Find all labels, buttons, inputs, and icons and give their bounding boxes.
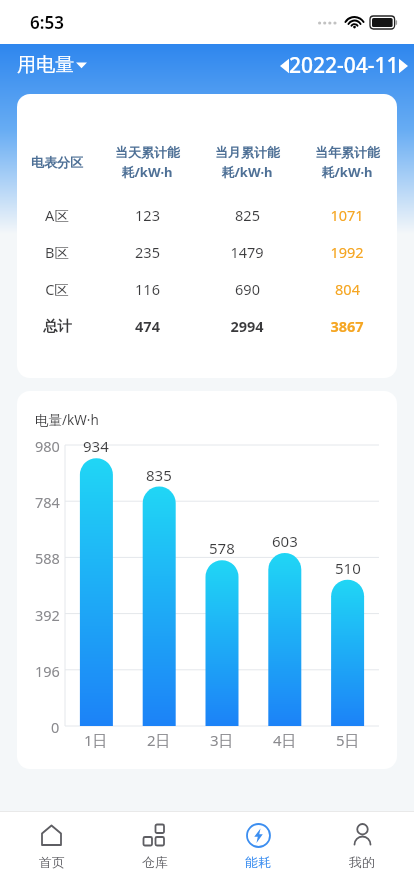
staticText: 当月累计能	[215, 144, 280, 160]
staticText: 784	[35, 492, 60, 512]
staticText: 当天累计能	[115, 144, 180, 160]
staticText: 934	[83, 436, 109, 456]
button[interactable]: 首页	[0, 812, 103, 896]
staticText: 电量/kW·h	[35, 411, 99, 429]
staticText: 我的	[349, 854, 375, 870]
staticText: A区	[45, 205, 69, 225]
staticText: 116	[135, 279, 160, 299]
staticText: 196	[35, 661, 60, 681]
other: Previous day	[280, 58, 289, 74]
staticText: B区	[45, 242, 69, 262]
staticText: 690	[235, 279, 260, 299]
staticText: 耗/kW·h	[121, 163, 173, 181]
staticText: 2日	[147, 730, 171, 750]
staticText: 3日	[210, 730, 234, 750]
staticText: 1日	[84, 730, 108, 750]
staticText: 耗/kW·h	[321, 163, 373, 181]
staticText: 6:53	[30, 11, 64, 34]
staticText: 980	[35, 436, 60, 456]
staticText: 5日	[336, 730, 360, 750]
staticText: 123	[135, 205, 160, 225]
staticText: 804	[335, 279, 360, 299]
staticText: 4日	[273, 730, 297, 750]
staticText: 588	[35, 548, 60, 568]
staticText: 能耗	[245, 854, 271, 870]
staticText: 总计	[43, 317, 72, 335]
staticText: 1071	[330, 205, 364, 225]
button[interactable]: 我的	[310, 812, 414, 896]
staticText: 当年累计能	[315, 144, 380, 160]
staticText: 仓库	[142, 854, 168, 870]
staticText: 825	[235, 205, 260, 225]
staticText: 835	[146, 465, 172, 485]
staticText: 首页	[39, 854, 65, 870]
staticText: 0	[51, 717, 60, 737]
staticText: 2022-04-11	[289, 51, 399, 80]
button[interactable]: 能耗	[206, 812, 310, 896]
other: Next day	[399, 58, 408, 74]
staticText: 474	[135, 316, 160, 336]
staticText: C区	[45, 279, 69, 299]
staticText: 耗/kW·h	[221, 163, 273, 181]
staticText: 用电量	[17, 53, 74, 77]
staticText: 578	[209, 538, 235, 558]
button[interactable]: 用电量	[15, 48, 89, 82]
staticText: 3867	[330, 316, 364, 336]
staticText: 电表分区	[31, 154, 83, 170]
staticText: 603	[272, 531, 298, 551]
button[interactable]: Previous day	[276, 46, 412, 85]
staticText: 2994	[230, 316, 264, 336]
staticText: 392	[35, 605, 60, 625]
button[interactable]: 仓库	[103, 812, 206, 896]
staticText: 1479	[230, 242, 264, 262]
staticText: 510	[335, 558, 361, 578]
staticText: 235	[135, 242, 160, 262]
staticText: 1992	[330, 242, 364, 262]
